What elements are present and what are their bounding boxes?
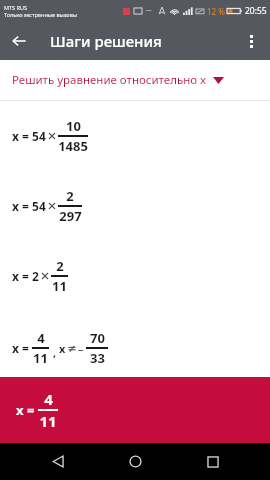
staticText: 11 [52,277,67,295]
staticText: x = 54 [12,128,46,144]
staticText: Только экстренные вызовы [4,11,77,18]
button[interactable]: x = 54 [0,111,270,161]
staticText: x [59,341,66,356]
staticText: 297 [59,207,82,225]
staticText: – [78,341,84,356]
staticText: MTS RUS [4,4,27,11]
button[interactable]: Решить уравнение относительно x [0,60,270,100]
button[interactable]: More options [232,22,270,60]
staticText: 1485 [58,137,88,155]
staticText: 12 % [207,6,225,17]
button[interactable]: Back [38,443,78,480]
staticText: 70 [90,329,105,347]
staticText: x = [16,401,35,419]
staticText: 11 [39,411,57,431]
staticText: 10 [66,117,81,135]
staticText: x = 2 [12,268,39,284]
staticText: Решить уравнение относительно x [12,72,207,88]
staticText: 11 [33,349,48,367]
staticText: x = [12,340,29,356]
button[interactable]: x = 2 [0,251,270,301]
staticText: 2 [56,257,64,275]
button[interactable]: Home [115,443,155,480]
staticText: Шаги решения [50,31,162,51]
button[interactable]: Back [0,22,38,60]
button[interactable]: x = [0,377,270,443]
staticText: 2 [66,187,74,205]
button[interactable]: x = [0,323,270,373]
staticText: 33 [90,349,105,367]
staticText: ··· [146,6,152,16]
button[interactable]: Recent apps [193,443,233,480]
staticText: 4 [44,389,53,409]
staticText: x = 54 [12,198,46,214]
staticText: , [53,345,57,360]
staticText: 20:55 [245,5,267,17]
button[interactable]: x = 54 [0,181,270,231]
staticText: 4 [37,329,45,347]
